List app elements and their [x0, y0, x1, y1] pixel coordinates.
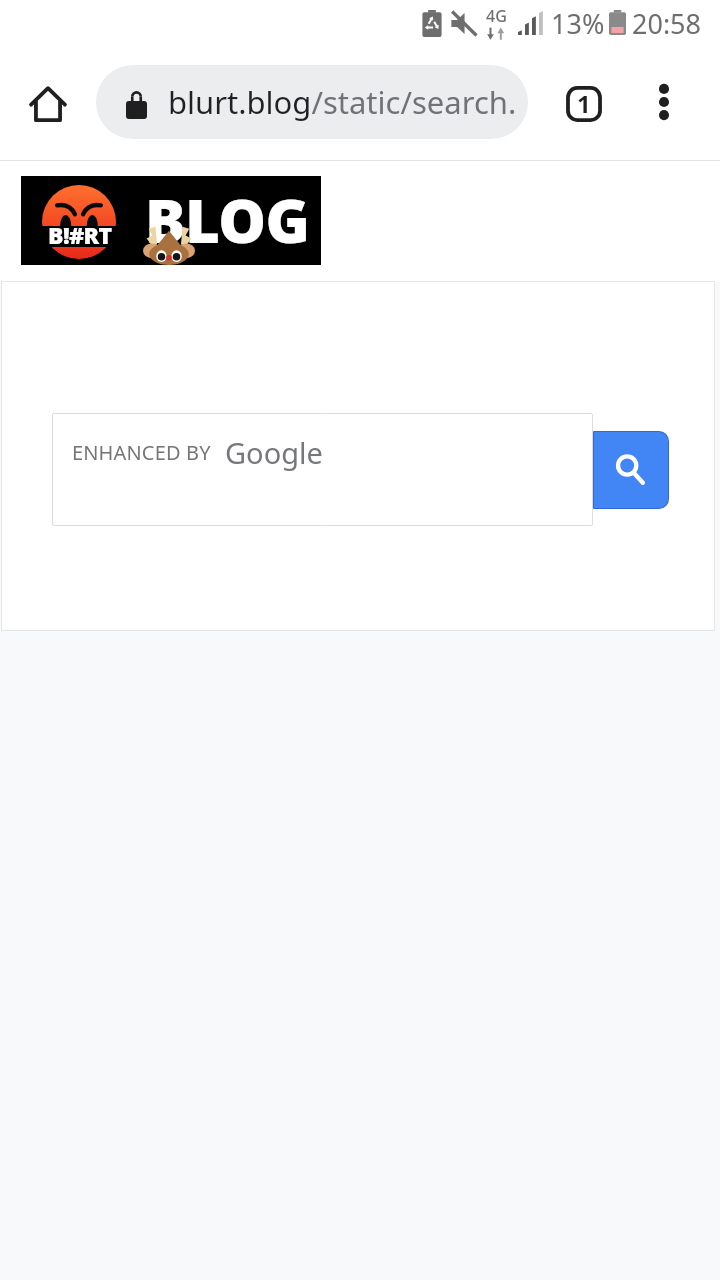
staticText: BLOG — [145, 179, 310, 261]
staticText: B!#RT — [48, 219, 112, 250]
staticText: 13% — [551, 5, 605, 42]
staticText: 4G — [486, 5, 507, 27]
button[interactable]: Search — [594, 432, 668, 508]
button[interactable]: More options — [634, 72, 694, 132]
staticText: 20:58 — [632, 5, 702, 42]
button[interactable]: Tabs — [552, 72, 616, 136]
staticText: 1 — [577, 87, 591, 120]
staticText: ENHANCED BY — [72, 439, 211, 466]
staticText: blurt.blog/static/search. — [168, 81, 517, 123]
staticText: Google — [225, 433, 323, 472]
button[interactable]: Home — [8, 73, 88, 135]
button[interactable]: blurt.blog/static/search. — [96, 65, 528, 139]
button[interactable]: ENHANCED BY — [52, 413, 593, 526]
